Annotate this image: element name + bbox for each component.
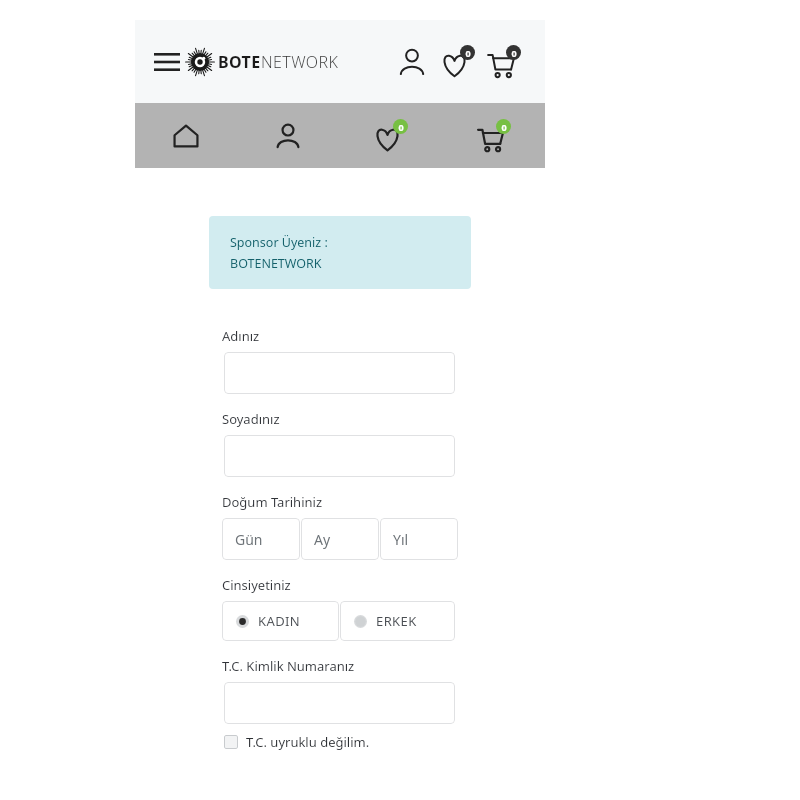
button[interactable]: Home xyxy=(135,103,237,168)
button[interactable]: Gün xyxy=(222,518,300,560)
staticText: Soyadınız xyxy=(222,410,280,428)
staticText: Ay xyxy=(314,530,331,549)
staticText: BOTE xyxy=(218,51,261,73)
staticText: 0 xyxy=(511,47,517,59)
button[interactable]: Account xyxy=(389,39,435,85)
button[interactable]: Cart xyxy=(481,39,527,85)
button[interactable]: ERKEK xyxy=(340,601,455,641)
staticText: T.C. Kimlik Numaranız xyxy=(222,657,355,675)
staticText: 0 xyxy=(465,47,471,59)
staticText: ERKEK xyxy=(376,612,417,630)
staticText: Adınız xyxy=(222,327,260,345)
button[interactable] xyxy=(224,682,455,724)
staticText: Sponsor Üyeniz : xyxy=(230,234,328,251)
button[interactable]: Sponsor Üyeniz : xyxy=(209,216,471,289)
button[interactable]: T.C. uyruklu değilim. xyxy=(224,733,370,751)
button[interactable]: KADIN xyxy=(222,601,339,641)
staticText: T.C. uyruklu değilim. xyxy=(246,733,370,751)
staticText: 0 xyxy=(501,121,507,133)
button[interactable]: Favourites xyxy=(339,103,442,168)
staticText: BOTENETWORK xyxy=(230,255,322,272)
button[interactable]: BOTE xyxy=(185,47,339,77)
button[interactable] xyxy=(224,435,455,477)
staticText: Yıl xyxy=(393,530,409,549)
staticText: Cinsiyetiniz xyxy=(222,576,291,594)
staticText: Gün xyxy=(235,530,263,549)
staticText: 0 xyxy=(398,121,404,133)
button[interactable]: Ay xyxy=(301,518,379,560)
staticText: KADIN xyxy=(258,612,301,630)
button[interactable]: Profile xyxy=(237,103,339,168)
button[interactable]: Favourites xyxy=(435,39,481,85)
button[interactable]: Menu xyxy=(145,40,189,84)
staticText: NETWORK xyxy=(261,51,339,73)
button[interactable] xyxy=(224,352,455,394)
button[interactable]: Cart xyxy=(442,103,545,168)
button[interactable]: Yıl xyxy=(380,518,458,560)
staticText: Doğum Tarihiniz xyxy=(222,493,323,511)
